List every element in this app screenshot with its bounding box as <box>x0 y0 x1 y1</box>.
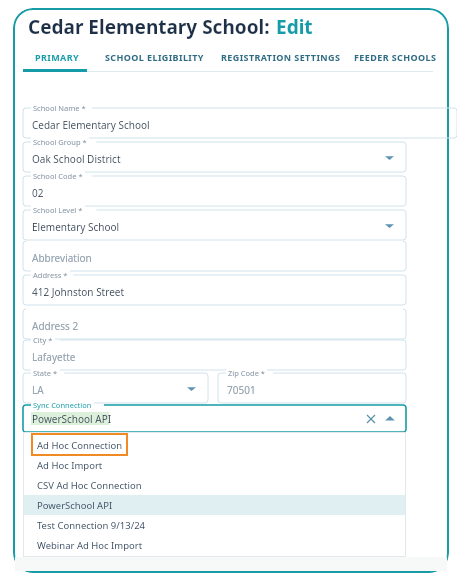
button[interactable]: LA <box>23 373 208 403</box>
button[interactable]: SCHOOL ELIGIBILITY <box>105 51 204 71</box>
staticText: Ad Hoc Connection <box>37 439 123 452</box>
staticText: School Level * <box>33 205 83 215</box>
button[interactable]: Collapse options <box>384 413 396 425</box>
staticText: CSV Ad Hoc Connection <box>37 479 142 492</box>
staticText: Address 2 <box>32 319 79 333</box>
button[interactable]: PRIMARY <box>35 51 80 71</box>
button[interactable]: 02 <box>23 176 406 206</box>
button[interactable]: Cedar Elementary School <box>23 108 457 138</box>
button[interactable]: REGISTRATION SETTINGS <box>221 51 341 71</box>
staticText: PowerSchool API <box>32 412 112 426</box>
staticText: 412 Johnston Street <box>32 285 125 299</box>
staticText: City * <box>33 335 53 345</box>
staticText: School Group * <box>33 137 87 147</box>
button[interactable]: FEEDER SCHOOLS <box>354 51 437 71</box>
staticText: Edit <box>276 14 313 40</box>
button[interactable]: CSV Ad Hoc Connection <box>23 475 406 495</box>
button[interactable]: PowerSchool API <box>23 495 406 515</box>
button[interactable]: Address 2 <box>23 309 406 339</box>
staticText: Lafayette <box>32 350 76 364</box>
staticText: FEEDER SCHOOLS <box>354 51 437 63</box>
staticText: PowerSchool API <box>37 499 113 512</box>
staticText: Cedar Elementary School: <box>28 14 270 40</box>
button[interactable]: PowerSchool API <box>23 405 406 432</box>
staticText: Abbreviation <box>32 251 92 265</box>
staticText: Address * <box>33 270 68 280</box>
staticText: Oak School District <box>32 152 121 166</box>
staticText: LA <box>32 383 44 397</box>
staticText: SCHOOL ELIGIBILITY <box>105 51 204 63</box>
button[interactable]: Elementary School <box>23 210 406 240</box>
staticText: Zip Code * <box>228 368 265 378</box>
button[interactable]: Webinar Ad Hoc Import <box>23 535 406 555</box>
staticText: Elementary School <box>32 220 120 234</box>
staticText: Webinar Ad Hoc Import <box>37 539 143 552</box>
staticText: 70501 <box>227 383 256 397</box>
button[interactable]: Abbreviation <box>23 241 406 271</box>
button[interactable]: Ad Hoc Import <box>23 455 406 475</box>
button[interactable]: Test Connection 9/13/24 <box>23 515 406 535</box>
button[interactable]: Clear <box>364 412 378 426</box>
staticText: School Code * <box>33 171 83 181</box>
staticText: Sync Connection <box>33 400 92 410</box>
button[interactable]: 70501 <box>218 373 406 403</box>
staticText: Cedar Elementary School <box>32 118 150 132</box>
button[interactable]: 412 Johnston Street <box>23 275 406 305</box>
button[interactable]: Lafayette <box>23 340 406 370</box>
staticText: School Name * <box>33 103 86 113</box>
staticText: PRIMARY <box>35 51 80 63</box>
staticText: Ad Hoc Import <box>37 459 103 472</box>
staticText: Test Connection 9/13/24 <box>37 519 146 532</box>
button[interactable]: Oak School District <box>23 142 406 172</box>
staticText: REGISTRATION SETTINGS <box>221 51 341 63</box>
staticText: State * <box>33 368 58 378</box>
button[interactable]: Ad Hoc Connection <box>23 435 406 455</box>
staticText: 02 <box>32 186 44 200</box>
